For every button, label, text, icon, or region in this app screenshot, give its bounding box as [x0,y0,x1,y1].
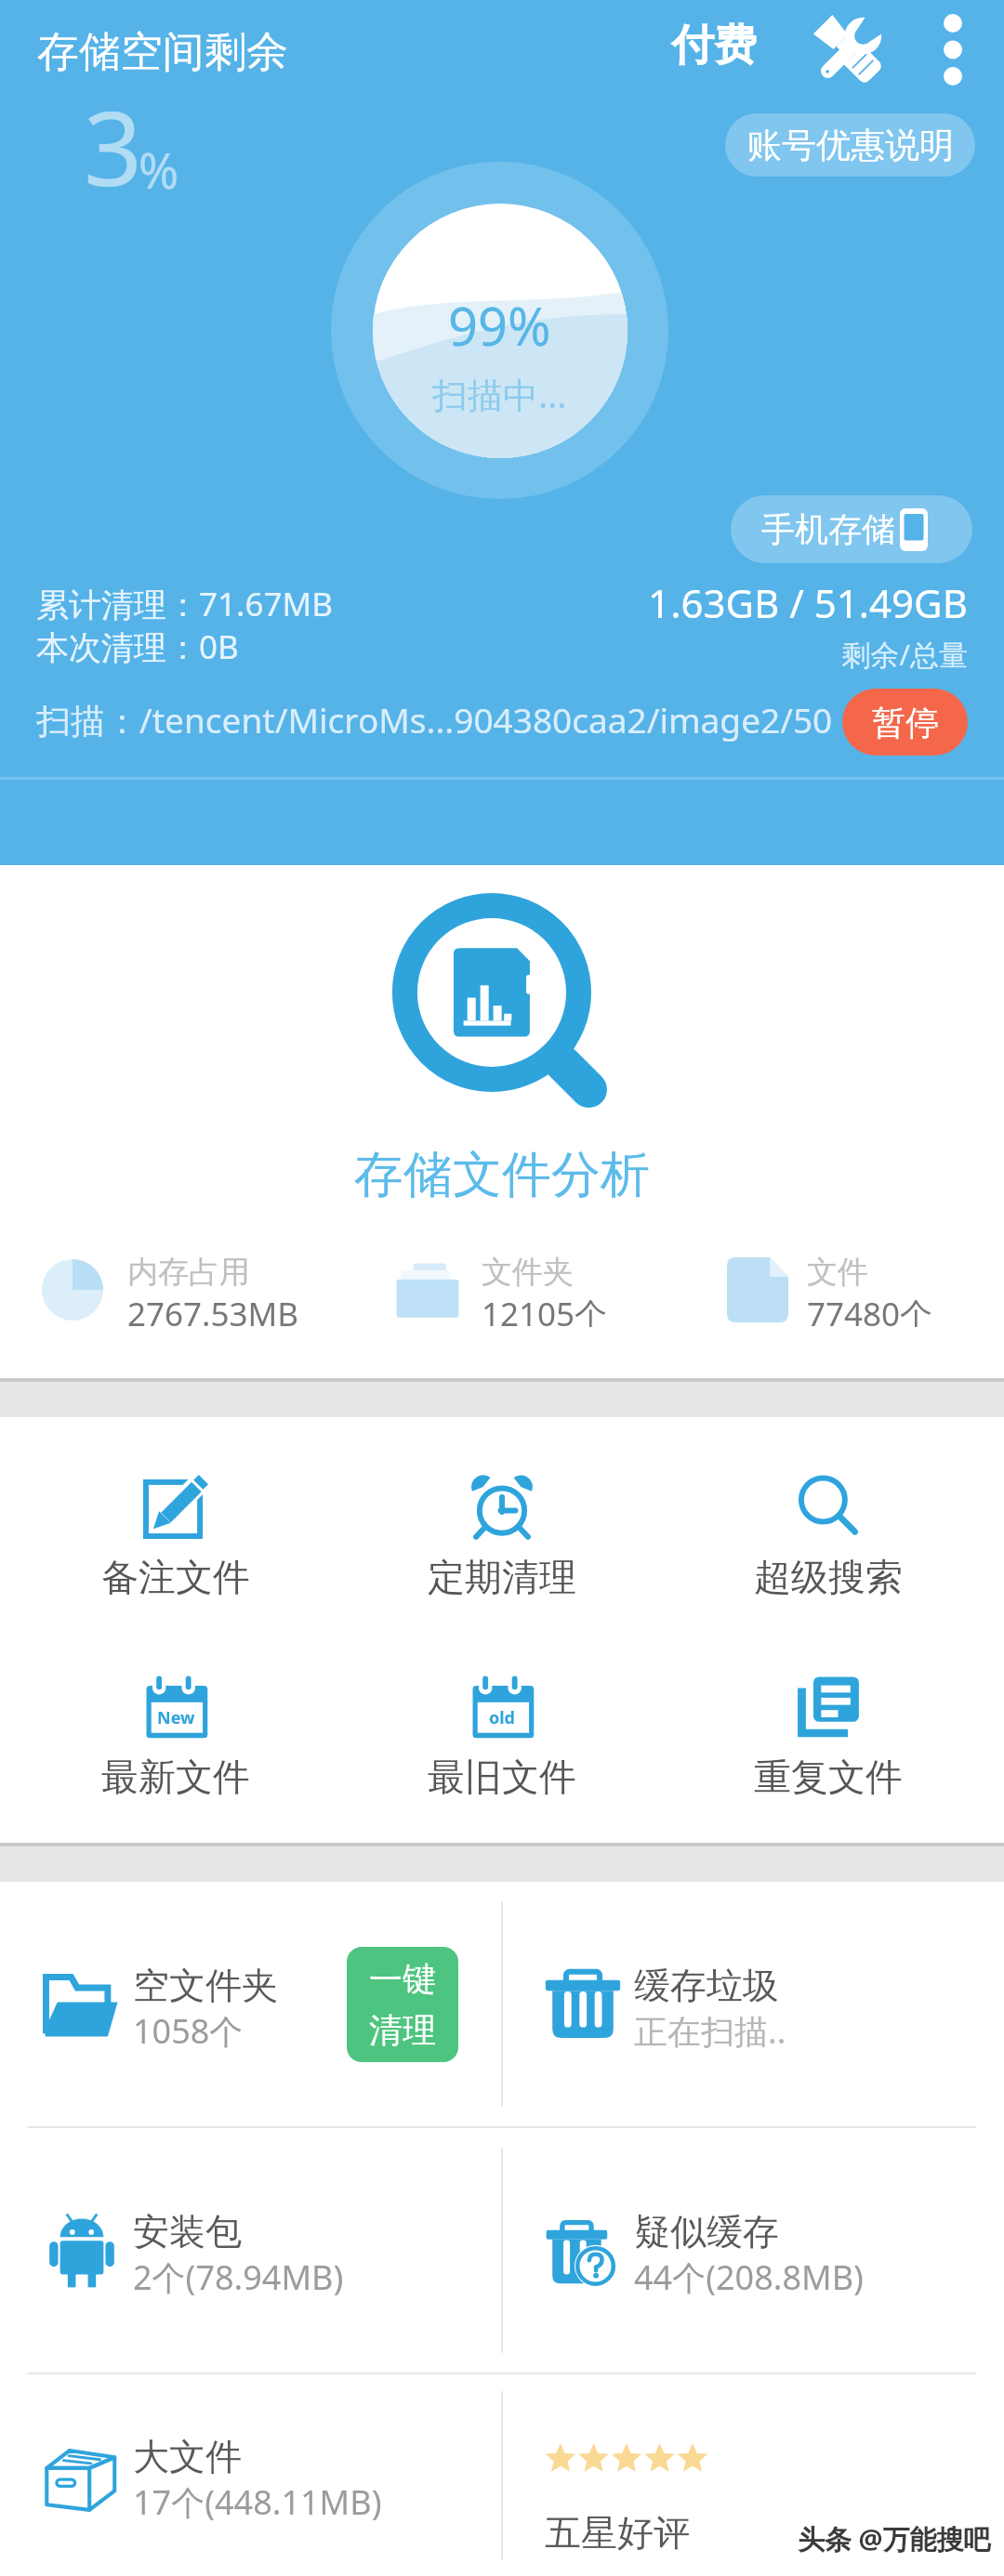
staticText: 定期清理 [428,1554,576,1600]
button[interactable]: 手机存储 [731,495,972,563]
button[interactable]: 疑似缓存 [503,2128,1004,2372]
staticText: 超级搜索 [754,1554,903,1600]
staticText: 44个(208.8MB) [634,2254,864,2300]
staticText: 17个(448.11MB) [133,2479,382,2525]
staticText: 正在扫描.. [634,2008,786,2054]
staticText: 安装包 [133,2209,242,2254]
staticText: 最新文件 [101,1754,250,1800]
staticText: 空文件夹 [133,1963,278,2008]
staticText: 五星好评 [545,2510,690,2556]
staticText: 内存占用 [127,1253,250,1292]
button[interactable]: 一键 [347,1947,458,2062]
button[interactable]: 付费 [656,6,772,85]
button[interactable]: 账号优惠说明 [725,113,975,177]
staticText: 疑似缓存 [634,2209,779,2254]
staticText: 2个(78.94MB) [133,2254,344,2300]
button[interactable]: 重复文件 [665,1674,991,1810]
staticText: 一键 [369,1958,436,2000]
button[interactable]: 定期清理 [338,1474,665,1610]
staticText: 1.63GB / 51.49GB [648,576,968,629]
button[interactable]: 暂停 [842,689,968,756]
button[interactable]: 存储文件分析 [0,865,1004,1378]
staticText: old [489,1706,515,1729]
button[interactable]: 大文件 [0,2374,501,2576]
staticText: 账号优惠说明 [747,124,954,167]
button[interactable]: old [338,1674,665,1810]
staticText: 77480个 [807,1292,933,1327]
button[interactable]: 备注文件 [13,1474,338,1610]
button[interactable]: More options [918,6,988,95]
staticText: 清理 [369,2009,436,2051]
staticText: 累计清理：71.67MB [36,582,333,626]
staticText: 缓存垃圾 [634,1963,779,2008]
button[interactable]: Tools [796,4,902,97]
button[interactable]: 缓存垃圾 [503,1882,1004,2126]
staticText: 重复文件 [754,1754,903,1800]
staticText: 文件夹 [482,1253,574,1292]
staticText: 文件 [807,1253,868,1292]
button[interactable]: 空文件夹 [0,1882,501,2126]
staticText: 扫描：/tencent/MicroMs...904380caa2/image2/… [36,696,833,743]
button[interactable]: New [13,1674,338,1810]
staticText: % [139,137,179,203]
staticText: 付费 [671,19,757,72]
button[interactable]: 超级搜索 [665,1474,991,1610]
staticText: 3 [84,76,142,216]
staticText: 12105个 [482,1292,608,1327]
staticText: 备注文件 [101,1554,250,1600]
staticText: 2767.53MB [127,1292,298,1327]
staticText: 存储文件分析 [354,1144,650,1206]
staticText: 头条 @万能搜吧 [798,2520,991,2557]
staticText: 扫描中... [432,370,567,418]
staticText: 1058个 [133,2008,244,2054]
button[interactable]: 安装包 [0,2128,501,2372]
staticText: 手机存储 [761,508,895,550]
staticText: 大文件 [133,2434,242,2479]
staticText: 本次清理：0B [36,624,239,669]
button[interactable]: 五星好评 [503,2374,1004,2576]
staticText: 暂停 [872,702,939,743]
staticText: 99% [448,290,551,361]
staticText: New [157,1706,195,1729]
staticText: 存储空间剩余 [37,26,288,79]
staticText: 剩余/总量 [841,635,968,674]
staticText: 最旧文件 [428,1754,576,1800]
